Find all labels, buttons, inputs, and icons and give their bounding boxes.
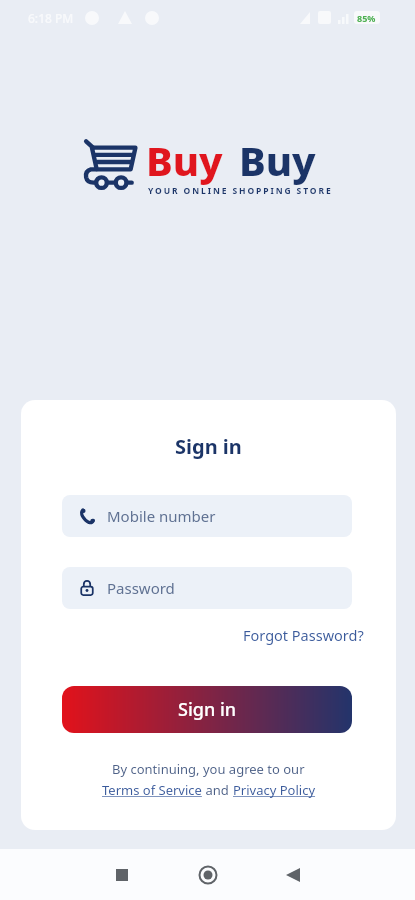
staticText: Sign in <box>178 697 237 722</box>
staticText: Sign in <box>175 433 242 460</box>
button[interactable]: Password <box>62 567 352 609</box>
staticText: Password <box>107 578 175 598</box>
button[interactable]: Sign in <box>62 686 352 733</box>
button[interactable]: Forgot Password? <box>243 625 364 645</box>
button[interactable] <box>196 863 220 887</box>
button[interactable] <box>110 863 134 887</box>
button[interactable]: Terms of Service <box>102 781 202 799</box>
staticText: Buy <box>146 133 223 187</box>
staticText: YOUR ONLINE SHOPPING STORE <box>148 185 333 197</box>
staticText: Buy <box>239 133 316 187</box>
staticText: 6:18 PM <box>28 10 74 26</box>
staticText: 85% <box>357 12 376 24</box>
staticText: Mobile number <box>107 506 216 526</box>
staticText: and <box>202 781 233 799</box>
staticText: By continuing, you agree to our <box>112 760 305 778</box>
button[interactable]: Mobile number <box>62 495 352 537</box>
button[interactable] <box>281 863 305 887</box>
button[interactable]: Privacy Policy <box>233 781 316 799</box>
